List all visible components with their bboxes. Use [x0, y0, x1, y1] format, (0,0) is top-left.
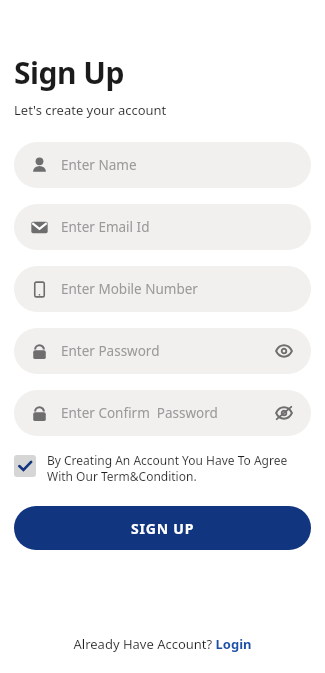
- staticText: Enter Email Id: [61, 218, 295, 236]
- staticText: Enter Confirm Password: [61, 404, 273, 422]
- button[interactable]: Show password: [273, 340, 295, 362]
- button[interactable]: Accept terms and conditions: [14, 452, 305, 485]
- button[interactable]: Already Have Account? Login: [0, 635, 325, 673]
- button[interactable]: Enter Password: [14, 328, 311, 374]
- staticText: Already Have Account? Login: [73, 635, 252, 653]
- staticText: Enter Name: [61, 156, 295, 174]
- other: Accept terms and conditions: [14, 455, 36, 477]
- button[interactable]: Enter Name: [14, 142, 311, 188]
- staticText: SIGN UP: [131, 519, 195, 538]
- staticText: Sign Up: [14, 52, 124, 93]
- button[interactable]: Enter Mobile Number: [14, 266, 311, 312]
- button[interactable]: SIGN UP: [14, 506, 311, 550]
- button[interactable]: Enter Confirm Password: [14, 390, 311, 436]
- staticText: Enter Mobile Number: [61, 280, 295, 298]
- staticText: By Creating An Account You Have To Agree…: [47, 452, 305, 485]
- button[interactable]: Hide password: [273, 402, 295, 424]
- button[interactable]: Enter Email Id: [14, 204, 311, 250]
- staticText: Let's create your account: [14, 101, 167, 119]
- staticText: Enter Password: [61, 342, 273, 360]
